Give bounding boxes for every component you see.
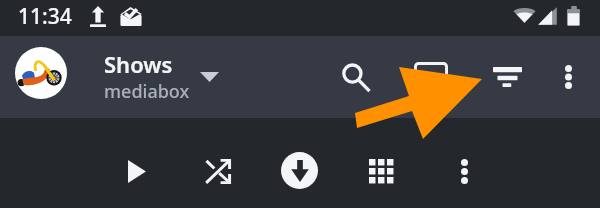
button[interactable]: Grid view [361,151,401,191]
button[interactable]: Download [281,152,318,189]
button[interactable]: Play [116,151,157,192]
button[interactable]: Shuffle [197,150,239,192]
button[interactable]: Filter [487,57,527,97]
staticText: 11:34 [18,2,72,31]
button[interactable]: Change library [195,62,223,92]
staticText: Shows [104,49,173,79]
button[interactable]: Cast [411,55,451,89]
button[interactable]: Shows [100,47,200,103]
staticText: mediabox [104,79,190,104]
button[interactable]: Search [336,57,380,101]
button[interactable]: More options [548,57,588,97]
button[interactable]: More options [444,151,484,191]
button[interactable]: Account [15,47,67,99]
